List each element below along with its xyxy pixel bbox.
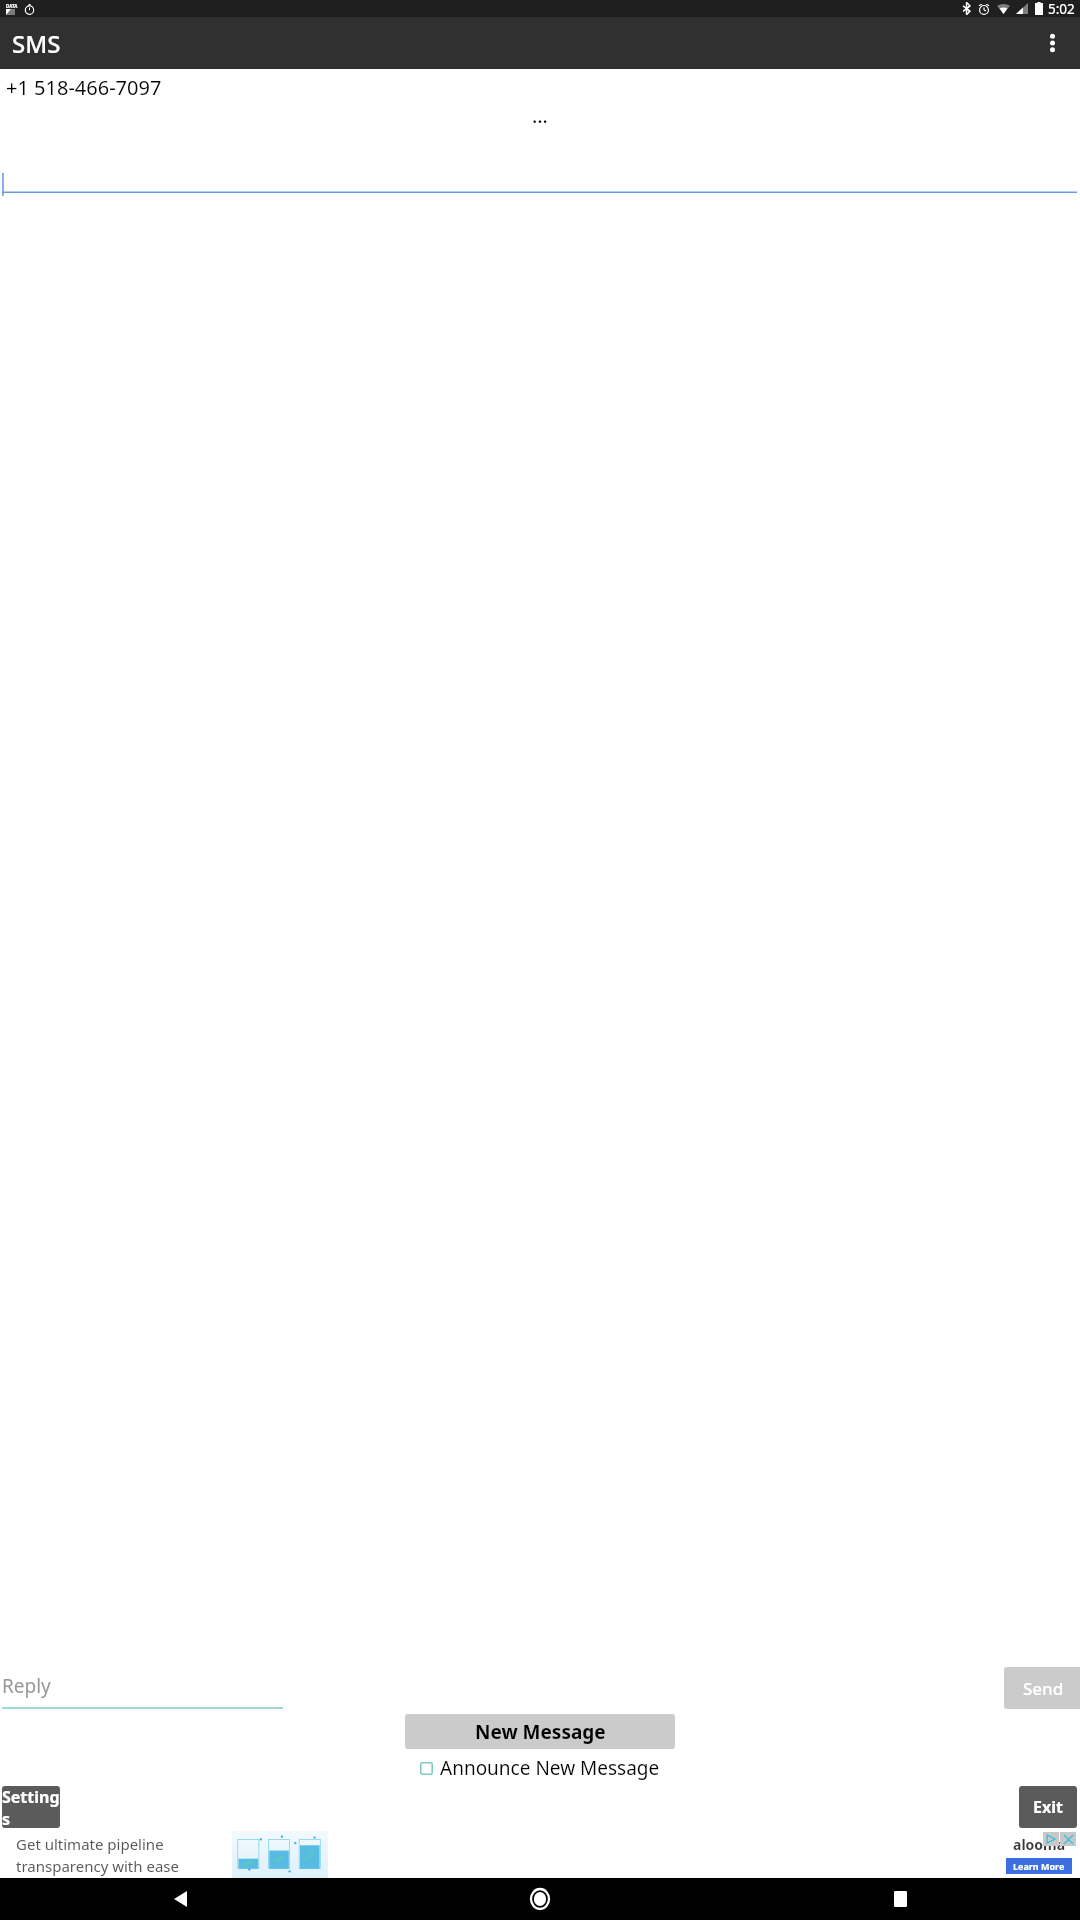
staticText: DATA	[6, 3, 18, 9]
button[interactable]: Back	[156, 1878, 204, 1920]
button[interactable]: Close ad	[1060, 1832, 1076, 1846]
button[interactable]: Recent apps	[876, 1878, 924, 1920]
staticText: Exit	[1033, 1796, 1063, 1818]
staticText: …	[0, 102, 1080, 129]
button[interactable]: New Message	[405, 1714, 675, 1749]
button[interactable]: Settings	[2, 1786, 60, 1828]
button[interactable]: Announce New Message	[420, 1755, 660, 1781]
staticText: New Message	[475, 1719, 606, 1745]
button[interactable]: Send	[1004, 1667, 1080, 1709]
button[interactable]: More options	[1028, 19, 1076, 67]
staticText: Settings	[2, 1786, 60, 1828]
button[interactable]: Advertisement	[0, 1831, 1080, 1878]
button[interactable]: Exit	[1019, 1786, 1077, 1828]
button[interactable]: Reply	[2, 1667, 283, 1709]
staticText: Announce New Message	[440, 1755, 660, 1781]
button[interactable]: Home	[516, 1878, 564, 1920]
staticText: transparency with ease	[16, 1856, 179, 1876]
staticText: Reply	[2, 1673, 51, 1699]
staticText: SMS	[12, 27, 61, 60]
staticText: +1 518-466-7097	[6, 74, 162, 101]
button[interactable]: Ad choices	[1043, 1832, 1059, 1846]
staticText: Send	[1023, 1677, 1064, 1700]
staticText: Get ultimate pipeline	[16, 1834, 164, 1854]
staticText: alooma	[1013, 1835, 1066, 1854]
staticText: Learn More	[1013, 1860, 1065, 1872]
button[interactable]: Learn More	[1006, 1858, 1072, 1874]
staticText: 5:02	[1048, 0, 1075, 17]
button[interactable]	[0, 173, 1080, 193]
